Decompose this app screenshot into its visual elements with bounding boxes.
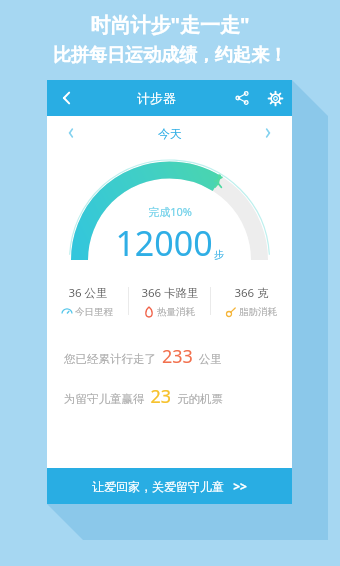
button[interactable]: 366 克	[211, 278, 292, 324]
button[interactable]: 36 公里	[47, 278, 128, 324]
staticText: 完成10%	[148, 204, 192, 219]
staticText: 时尚计步"走一走"	[90, 11, 250, 38]
staticText: 今天	[158, 126, 182, 141]
staticText: 您已经累计行走了 233 公里	[64, 344, 222, 369]
staticText: 今日里程	[75, 306, 113, 318]
staticText: >>	[233, 478, 247, 494]
staticText: 让爱回家，关爱留守儿童	[92, 479, 224, 494]
staticText: 计步器	[137, 90, 176, 106]
staticText: 脂肪消耗	[239, 306, 277, 318]
button[interactable]: Settings	[258, 80, 292, 116]
staticText: 366 卡路里	[141, 285, 199, 301]
staticText: 366 克	[234, 285, 269, 301]
staticText: 36 公里	[68, 285, 108, 301]
button[interactable]: 366 卡路里	[129, 278, 210, 324]
staticText: 比拼每日运动成绩，约起来！	[53, 44, 287, 67]
staticText: 12000	[115, 220, 213, 266]
button[interactable]: 让爱回家，关爱留守儿童	[47, 468, 292, 504]
button[interactable]: Share	[226, 80, 258, 116]
button[interactable]: Previous day	[59, 121, 83, 145]
button[interactable]: Back	[47, 80, 87, 116]
staticText: 热量消耗	[157, 306, 195, 318]
staticText: 步	[214, 248, 224, 261]
button[interactable]: Next day	[256, 121, 280, 145]
staticText: 为留守儿童赢得 23 元的机票	[64, 384, 224, 409]
